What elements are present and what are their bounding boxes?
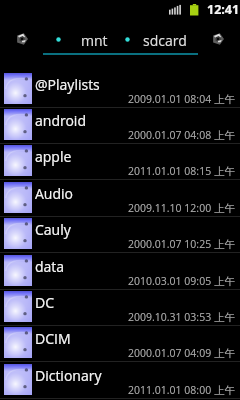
- button[interactable]: Dictionary: [0, 363, 240, 399]
- staticText: sdcard: [143, 31, 187, 50]
- staticText: Audio: [35, 184, 74, 203]
- button[interactable]: Previous tab: [16, 33, 28, 45]
- staticText: 2009.11.10 12:00 上午: [128, 201, 235, 215]
- staticText: 2011.01.01 08:15 上午: [128, 164, 235, 178]
- staticText: 2000.01.07 04:09 上午: [128, 346, 235, 360]
- staticText: 2000.01.07 10:25 上午: [128, 237, 235, 251]
- button[interactable]: apple: [0, 144, 240, 180]
- staticText: 2009.01.01 08:04 上午: [128, 92, 235, 106]
- button[interactable]: data: [0, 254, 240, 290]
- button[interactable]: Next tab: [212, 33, 224, 45]
- button[interactable]: DCIM: [0, 326, 240, 362]
- button[interactable]: sdcard: [143, 31, 187, 50]
- staticText: 2000.01.07 04:08 上午: [128, 128, 235, 142]
- staticText: 2009.10.31 03:53 上午: [128, 310, 235, 324]
- staticText: 12:41: [207, 1, 240, 18]
- button[interactable]: Audio: [0, 181, 240, 217]
- staticText: Dictionary: [35, 366, 102, 385]
- staticText: DCIM: [35, 329, 71, 348]
- staticText: Cauly: [35, 220, 71, 239]
- staticText: @Playlists: [35, 75, 100, 94]
- button[interactable]: DC: [0, 290, 240, 326]
- staticText: apple: [35, 147, 72, 166]
- staticText: 2010.03.01 09:05 上午: [128, 274, 235, 288]
- button[interactable]: mnt: [81, 31, 108, 50]
- staticText: data: [35, 257, 65, 276]
- staticText: android: [35, 111, 86, 130]
- button[interactable]: @Playlists: [0, 72, 240, 108]
- staticText: mnt: [81, 31, 108, 50]
- staticText: DC: [35, 293, 55, 312]
- staticText: 2011.01.01 08:00 上午: [128, 383, 235, 397]
- button[interactable]: android: [0, 108, 240, 144]
- button[interactable]: Cauly: [0, 217, 240, 253]
